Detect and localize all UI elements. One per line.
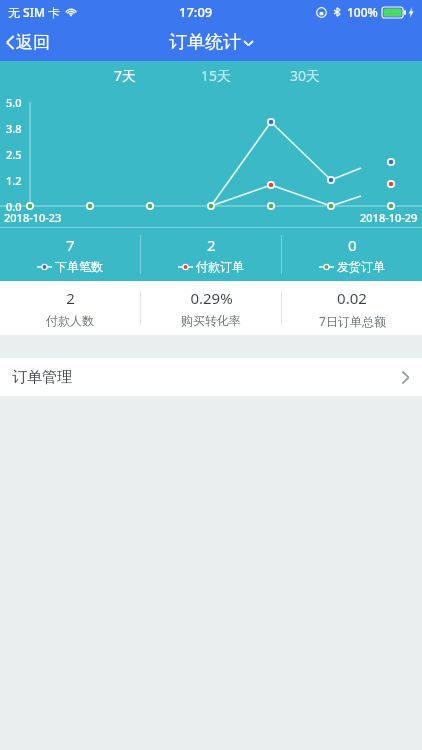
other: 进入订单管理 <box>401 370 410 385</box>
button[interactable]: 0.02 <box>282 281 422 335</box>
staticText: 0 <box>348 235 357 255</box>
button[interactable]: 0.29% <box>141 281 281 335</box>
button[interactable]: 返回 <box>0 28 60 57</box>
button[interactable]: 2 <box>141 228 281 281</box>
staticText: 付款人数 <box>46 313 94 328</box>
staticText: 17:09 <box>179 3 213 21</box>
button[interactable]: 15天 <box>193 62 240 89</box>
staticText: 订单统计 <box>169 31 241 54</box>
button[interactable]: 0 <box>282 228 422 281</box>
button[interactable]: 7天 <box>106 62 145 89</box>
staticText: 5.0 <box>6 95 22 110</box>
button[interactable]: 30天 <box>282 62 329 89</box>
staticText: 7 <box>66 235 75 255</box>
staticText: 2 <box>207 235 216 255</box>
button[interactable]: 订单统计 <box>165 27 258 58</box>
staticText: 2.5 <box>6 147 22 162</box>
button[interactable]: 2 <box>0 281 140 335</box>
staticText: 2 <box>66 288 75 308</box>
staticText: 0.29% <box>190 288 233 308</box>
staticText: 无 SIM 卡 <box>8 4 61 20</box>
staticText: 3.8 <box>6 121 22 136</box>
staticText: 下单笔数 <box>55 259 103 274</box>
staticText: 购买转化率 <box>181 313 241 328</box>
staticText: 1.2 <box>6 173 22 188</box>
staticText: 0.0 <box>6 199 22 214</box>
staticText: 订单管理 <box>12 368 72 387</box>
staticText: 7天 <box>114 66 137 85</box>
staticText: 2018-10-29 <box>360 210 418 225</box>
staticText: 2018-10-23 <box>4 210 62 225</box>
button[interactable]: 7 <box>0 228 140 281</box>
staticText: 发货订单 <box>337 259 385 274</box>
staticText: 付款订单 <box>196 259 244 274</box>
staticText: 0.02 <box>337 288 367 308</box>
staticText: 100% <box>347 4 378 20</box>
staticText: 7日订单总额 <box>319 313 386 329</box>
staticText: 30天 <box>290 66 321 85</box>
button[interactable]: 订单管理 <box>0 358 422 396</box>
staticText: 返回 <box>16 32 50 53</box>
staticText: 15天 <box>201 66 232 85</box>
